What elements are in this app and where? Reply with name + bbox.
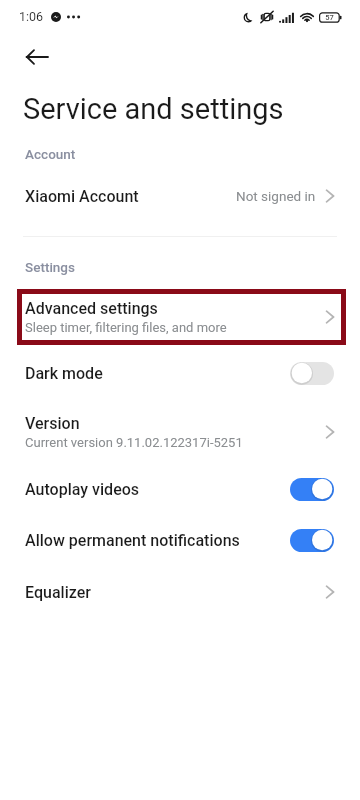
button[interactable]: Advanced settings xyxy=(17,289,346,345)
staticText: Autoplay videos xyxy=(25,480,140,499)
staticText: Xiaomi Account xyxy=(25,187,139,206)
staticText: Settings xyxy=(25,259,75,275)
staticText: 1:06 xyxy=(19,9,44,24)
staticText: 57 xyxy=(325,13,334,22)
button[interactable]: Switch on xyxy=(290,476,334,502)
button[interactable]: Allow permanent notifications xyxy=(0,517,360,563)
staticText: Service and settings xyxy=(23,92,284,126)
staticText: Sleep timer, filtering files, and more xyxy=(25,320,227,335)
button[interactable]: Switch off xyxy=(290,360,334,386)
button[interactable]: Back xyxy=(17,37,57,77)
button[interactable]: Dark mode xyxy=(0,350,360,396)
staticText: Account xyxy=(25,146,76,162)
button[interactable]: Xiaomi Account xyxy=(0,173,360,219)
button[interactable]: Version xyxy=(0,409,360,455)
staticText: Advanced settings xyxy=(25,299,158,318)
button[interactable]: Autoplay videos xyxy=(0,466,360,512)
staticText: Version xyxy=(25,414,80,433)
staticText: Allow permanent notifications xyxy=(25,531,240,550)
button[interactable]: Switch on xyxy=(290,527,334,553)
staticText: Equalizer xyxy=(25,583,91,602)
staticText: Not signed in xyxy=(236,188,316,204)
staticText: Current version 9.11.02.122317i-5251 xyxy=(25,435,243,450)
button[interactable]: Equalizer xyxy=(0,569,360,615)
staticText: Dark mode xyxy=(25,364,103,383)
